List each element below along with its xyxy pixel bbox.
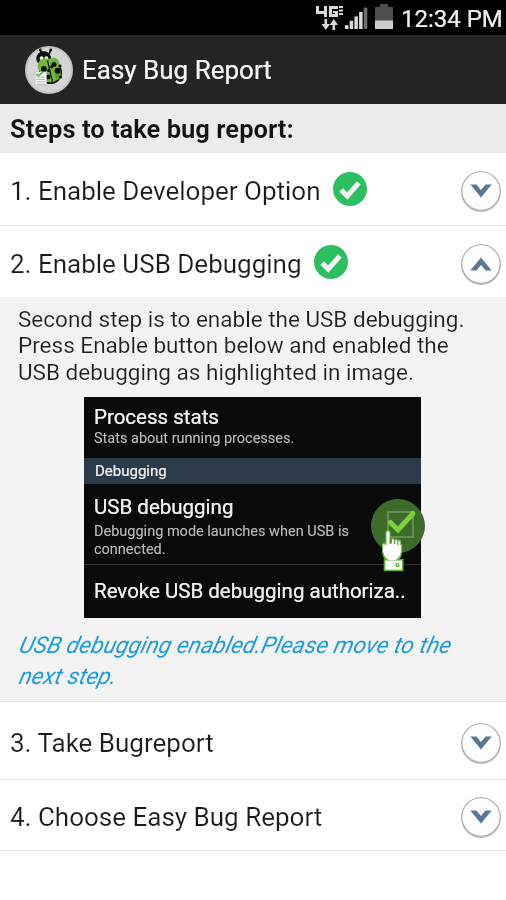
button[interactable]: Expand — [460, 722, 502, 764]
staticText: Stats about running processes. — [94, 430, 295, 447]
staticText: 12:34 PM — [401, 5, 503, 33]
staticText: Revoke USB debugging authoriza.. — [94, 579, 406, 603]
button[interactable]: Expand — [460, 170, 502, 212]
staticText: 3. Take Bugreport — [10, 728, 214, 758]
staticText: USB debugging enabled.Please move to the… — [18, 632, 462, 689]
staticText: Easy Bug Report — [82, 55, 272, 85]
button[interactable]: Collapse — [460, 243, 502, 285]
button[interactable]: 2. Enable USB Debugging — [0, 226, 506, 297]
staticText: Process stats — [94, 405, 219, 429]
staticText: 2. Enable USB Debugging — [10, 249, 302, 279]
staticText: 4. Choose Easy Bug Report — [10, 802, 323, 832]
button[interactable]: 3. Take Bugreport — [0, 702, 506, 779]
button[interactable]: 1. Enable Developer Option — [0, 153, 506, 225]
staticText: Debugging mode launches when USB is conn… — [94, 523, 364, 558]
staticText: USB debugging — [94, 495, 234, 519]
button[interactable]: Expand — [460, 796, 502, 838]
staticText: Steps to take bug report: — [10, 114, 294, 144]
staticText: 1. Enable Developer Option — [10, 176, 321, 206]
staticText: Second step is to enable the USB debuggi… — [18, 306, 486, 386]
button[interactable]: 4. Choose Easy Bug Report — [0, 780, 506, 850]
staticText: Debugging — [95, 462, 167, 480]
